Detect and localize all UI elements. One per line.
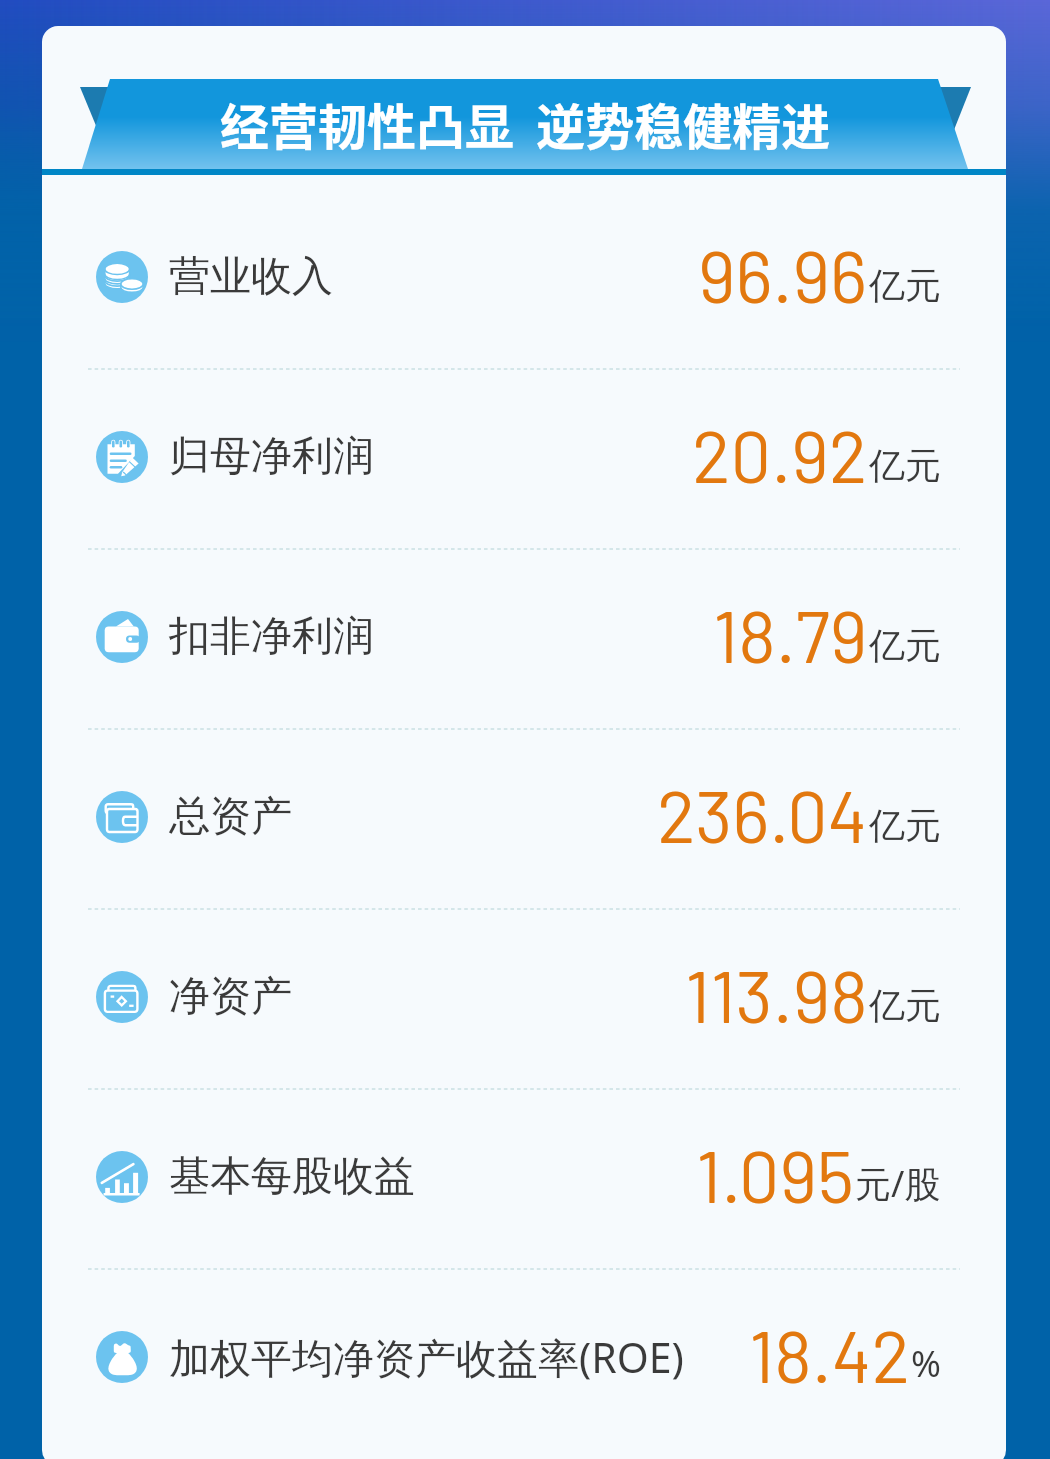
staticText: 亿元 <box>869 443 941 488</box>
staticText: 18.42 <box>749 1311 910 1397</box>
staticText: 经营韧性凸显 逆势稳健精进 <box>220 88 831 156</box>
staticText: 归母净利润 <box>169 431 374 483</box>
staticText: 亿元 <box>869 803 941 848</box>
button[interactable]: 加权平均净资产收益率(ROE) <box>96 1312 938 1402</box>
staticText: 净资产 <box>169 971 292 1023</box>
staticText: 扣非净利润 <box>169 611 374 663</box>
staticText: 亿元 <box>869 623 941 668</box>
staticText: 加权平均净资产收益率(ROE) <box>169 1329 684 1385</box>
staticText: 236.04 <box>657 771 868 857</box>
button[interactable]: 基本每股收益 <box>96 1132 938 1222</box>
staticText: 96.96 <box>698 231 868 317</box>
staticText: 18.79 <box>713 591 868 677</box>
staticText: % <box>911 1339 941 1388</box>
staticText: 113.98 <box>685 951 868 1037</box>
staticText: 营业收入 <box>169 251 333 303</box>
button[interactable]: 总资产 <box>96 772 938 862</box>
staticText: 亿元 <box>869 983 941 1028</box>
button[interactable]: 扣非净利润 <box>96 592 938 682</box>
staticText: 1.095 <box>696 1131 854 1217</box>
staticText: 20.92 <box>692 411 868 497</box>
staticText: 基本每股收益 <box>169 1151 415 1203</box>
staticText: 亿元 <box>869 263 941 308</box>
button[interactable]: 营业收入 <box>96 232 938 322</box>
staticText: 总资产 <box>169 791 292 843</box>
button[interactable]: 净资产 <box>96 952 938 1042</box>
staticText: 元/股 <box>855 1159 941 1208</box>
button[interactable]: 归母净利润 <box>96 412 938 502</box>
